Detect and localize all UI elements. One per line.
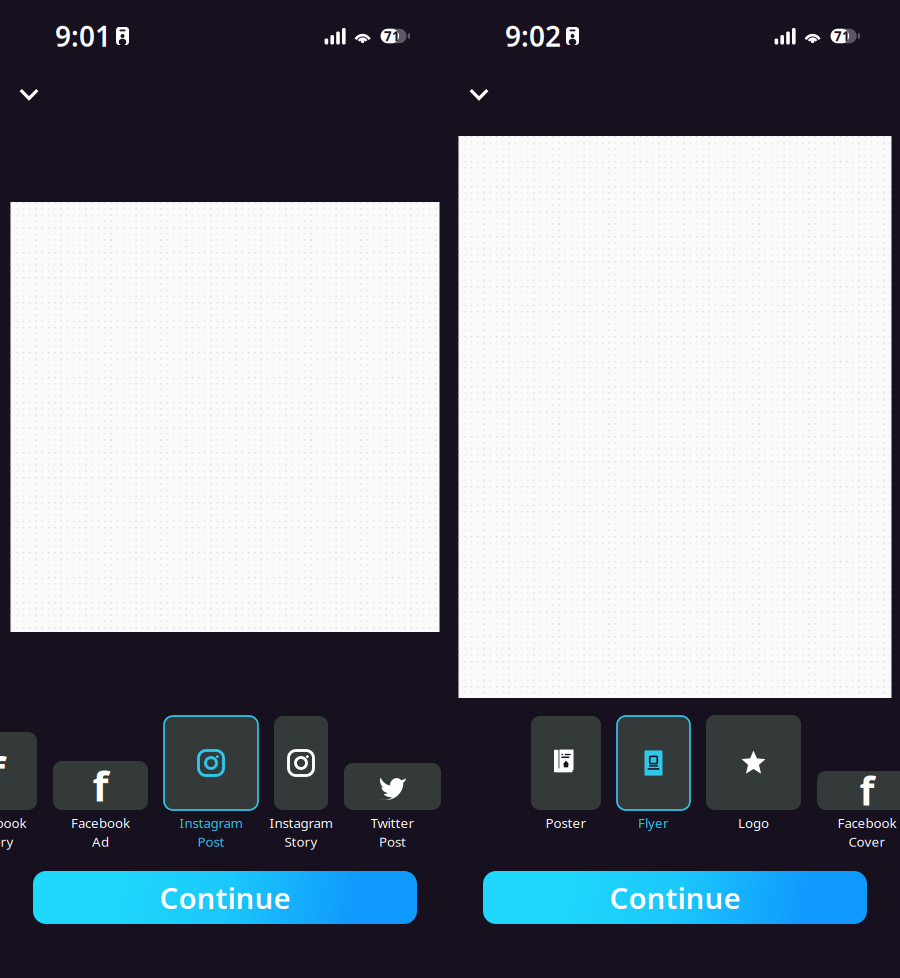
staticText: 9:02: [505, 17, 561, 55]
staticText: Ad: [92, 833, 109, 850]
button[interactable]: Poster: [531, 715, 601, 860]
button[interactable]: f: [817, 715, 900, 860]
button[interactable]: Instagram: [274, 715, 328, 860]
button[interactable]: f: [0, 715, 37, 860]
button[interactable]: f: [53, 715, 148, 860]
staticText: f: [92, 758, 108, 813]
staticText: Story: [284, 833, 317, 850]
staticText: Post: [379, 833, 406, 850]
staticText: Instagram: [269, 814, 332, 832]
staticText: Instagram: [179, 814, 242, 832]
button[interactable]: Flyer: [617, 715, 690, 860]
button[interactable]: Twitter: [344, 715, 441, 860]
button[interactable]: Collapse: [459, 78, 499, 114]
staticText: Poster: [545, 814, 586, 832]
staticText: Cover: [848, 833, 885, 850]
staticText: 9:01: [55, 17, 111, 55]
staticText: Twitter: [370, 814, 414, 832]
staticText: Continue: [159, 878, 290, 917]
staticText: Post: [197, 833, 224, 850]
button[interactable]: Continue: [33, 871, 417, 924]
staticText: Flyer: [638, 814, 669, 832]
staticText: f: [859, 765, 874, 816]
staticText: Logo: [738, 814, 769, 832]
button[interactable]: Logo: [706, 715, 801, 860]
button[interactable]: Collapse: [9, 78, 49, 114]
button[interactable]: Continue: [483, 871, 867, 924]
staticText: f: [0, 744, 5, 798]
staticText: Facebook: [0, 814, 26, 832]
staticText: Facebook: [71, 814, 130, 832]
staticText: 71: [834, 27, 850, 45]
staticText: Facebook: [837, 814, 896, 832]
staticText: Story: [0, 833, 13, 850]
button[interactable]: Instagram: [164, 715, 258, 860]
staticText: 71: [384, 27, 400, 45]
staticText: Continue: [609, 878, 740, 917]
